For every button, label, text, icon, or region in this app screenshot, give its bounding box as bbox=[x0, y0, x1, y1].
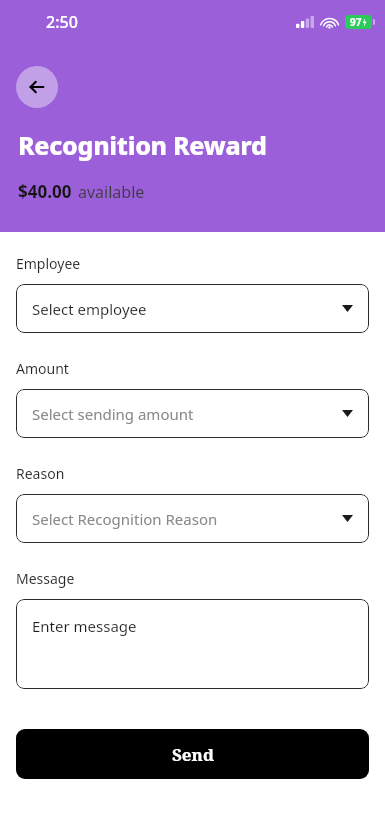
button[interactable]: Back bbox=[16, 66, 58, 108]
staticText: Message bbox=[16, 569, 75, 588]
staticText: Employee bbox=[16, 254, 81, 273]
button[interactable]: Send bbox=[16, 729, 369, 779]
staticText: Reason bbox=[16, 464, 65, 483]
button[interactable]: Select sending amount bbox=[16, 389, 369, 438]
staticText: 2:50 bbox=[46, 11, 78, 33]
staticText: Recognition Reward bbox=[18, 128, 267, 162]
staticText: Select Recognition Reason bbox=[32, 509, 218, 529]
staticText: Send bbox=[172, 743, 214, 766]
button[interactable]: Select employee bbox=[16, 284, 369, 333]
button[interactable]: Select Recognition Reason bbox=[16, 494, 369, 543]
staticText: Enter message bbox=[32, 616, 137, 636]
staticText: Select employee bbox=[32, 299, 147, 319]
staticText: available bbox=[78, 181, 145, 203]
staticText: 97 bbox=[350, 15, 362, 29]
staticText: Select sending amount bbox=[32, 404, 194, 424]
staticText: Amount bbox=[16, 359, 69, 378]
staticText: $40.00 bbox=[18, 180, 72, 203]
button[interactable]: Enter message bbox=[16, 599, 369, 689]
